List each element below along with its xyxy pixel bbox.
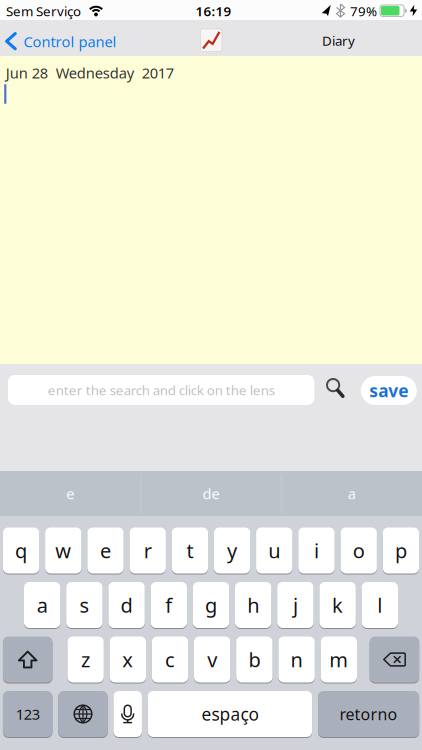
- button[interactable]: Chart: [200, 29, 222, 51]
- button[interactable]: Shift: [3, 636, 52, 682]
- staticText: v: [207, 646, 217, 673]
- staticText: Jun 28 Wednesday 2017: [6, 63, 174, 83]
- button[interactable]: d: [108, 582, 145, 628]
- staticText: de: [202, 484, 219, 503]
- button[interactable]: enter the search and click on the lens: [8, 375, 314, 405]
- button[interactable]: espaço: [148, 691, 312, 737]
- staticText: w: [55, 537, 71, 564]
- button[interactable]: p: [383, 527, 419, 573]
- button[interactable]: z: [67, 636, 104, 682]
- button[interactable]: Delete: [370, 636, 419, 682]
- button[interactable]: l: [362, 582, 398, 628]
- button[interactable]: y: [214, 527, 250, 573]
- button[interactable]: q: [3, 527, 39, 573]
- staticText: espaço: [201, 702, 258, 725]
- button[interactable]: Control panel: [5, 32, 117, 51]
- button[interactable]: c: [152, 636, 188, 682]
- staticText: s: [79, 592, 89, 618]
- staticText: b: [248, 646, 260, 673]
- button[interactable]: de: [142, 471, 280, 516]
- staticText: d: [121, 592, 133, 618]
- button[interactable]: w: [45, 527, 81, 573]
- button[interactable]: a: [283, 471, 421, 516]
- staticText: h: [247, 592, 259, 618]
- button[interactable]: save: [361, 376, 417, 405]
- staticText: t: [186, 537, 193, 564]
- button[interactable]: x: [110, 636, 146, 682]
- staticText: p: [395, 537, 407, 564]
- button[interactable]: r: [129, 527, 166, 573]
- staticText: e: [66, 484, 74, 503]
- staticText: y: [227, 537, 237, 564]
- button[interactable]: Numbers: [3, 691, 52, 737]
- staticText: f: [165, 592, 172, 618]
- button[interactable]: Next keyboard: [58, 691, 108, 737]
- staticText: retorno: [340, 703, 398, 725]
- button[interactable]: Dictate: [113, 691, 142, 737]
- staticText: e: [100, 537, 111, 564]
- staticText: j: [293, 592, 298, 618]
- staticText: z: [81, 646, 90, 673]
- staticText: n: [291, 646, 303, 673]
- staticText: 79%: [350, 2, 377, 20]
- staticText: q: [15, 537, 27, 564]
- staticText: o: [353, 537, 365, 564]
- button[interactable]: t: [172, 527, 208, 573]
- staticText: k: [332, 592, 343, 618]
- button[interactable]: h: [235, 582, 271, 628]
- staticText: Diary: [322, 32, 355, 49]
- staticText: l: [377, 592, 382, 618]
- button[interactable]: u: [256, 527, 292, 573]
- staticText: Sem Serviço: [6, 2, 81, 20]
- staticText: enter the search and click on the lens: [48, 381, 275, 399]
- button[interactable]: k: [319, 582, 356, 628]
- staticText: u: [268, 537, 280, 564]
- staticText: m: [329, 646, 348, 673]
- staticText: Control panel: [24, 32, 117, 51]
- button[interactable]: e: [1, 471, 139, 516]
- staticText: c: [165, 646, 175, 673]
- staticText: i: [314, 537, 319, 564]
- staticText: a: [348, 484, 356, 503]
- button[interactable]: e: [87, 527, 124, 573]
- button[interactable]: i: [298, 527, 335, 573]
- button[interactable]: s: [66, 582, 103, 628]
- button[interactable]: g: [193, 582, 229, 628]
- button[interactable]: v: [194, 636, 230, 682]
- button[interactable]: b: [236, 636, 273, 682]
- button[interactable]: j: [277, 582, 314, 628]
- staticText: 123: [16, 704, 40, 724]
- button[interactable]: Search: [324, 377, 347, 400]
- button[interactable]: m: [321, 636, 357, 682]
- staticText: x: [122, 646, 133, 673]
- button[interactable]: f: [151, 582, 187, 628]
- button[interactable]: o: [340, 527, 377, 573]
- button[interactable]: n: [278, 636, 315, 682]
- button[interactable]: retorno: [318, 691, 419, 737]
- staticText: 16:19: [195, 2, 231, 20]
- staticText: g: [205, 592, 217, 618]
- button[interactable]: a: [24, 582, 60, 628]
- staticText: r: [144, 537, 152, 564]
- staticText: save: [369, 379, 408, 402]
- staticText: a: [37, 592, 48, 618]
